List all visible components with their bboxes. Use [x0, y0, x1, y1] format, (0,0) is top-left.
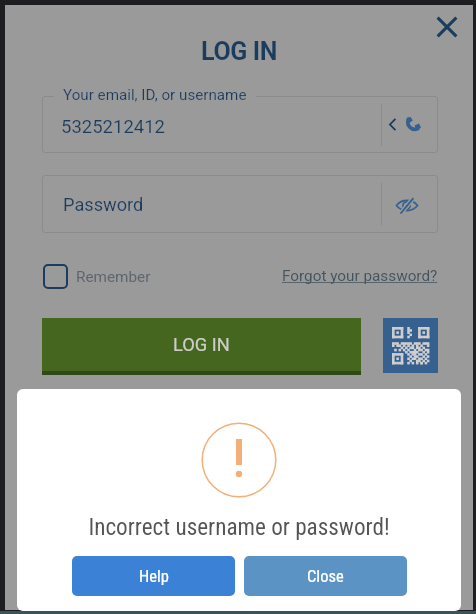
staticText: 5325212412	[61, 116, 165, 138]
button[interactable]: Help	[72, 556, 235, 596]
button[interactable]: Close	[244, 556, 407, 596]
staticText: Your email, ID, or username	[63, 86, 247, 104]
button[interactable]: Scan QR code	[383, 318, 438, 373]
button[interactable]: LOG IN	[42, 318, 361, 375]
staticText: LOG IN	[201, 37, 277, 66]
staticText: Password	[63, 194, 144, 215]
button[interactable]: Show password	[382, 176, 436, 232]
staticText: Help	[139, 567, 169, 586]
staticText: LOG IN	[173, 334, 230, 355]
staticText: Remember	[76, 268, 151, 286]
button[interactable]: Close	[425, 5, 469, 49]
button[interactable]: Forgot your password?	[282, 267, 438, 285]
button[interactable]: Remember	[42, 264, 151, 289]
staticText: Incorrect username or password!	[88, 513, 390, 540]
staticText: Close	[307, 567, 344, 586]
button[interactable]: Select phone country code	[382, 97, 436, 152]
